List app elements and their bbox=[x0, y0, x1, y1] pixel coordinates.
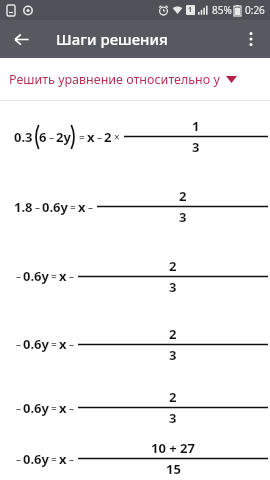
staticText: 10 + 27 bbox=[151, 439, 195, 457]
staticText: Шаги решения bbox=[56, 29, 168, 49]
staticText: 2y bbox=[56, 128, 71, 146]
staticText: 0.6y bbox=[23, 335, 49, 353]
staticText: = bbox=[51, 452, 57, 466]
staticText: – bbox=[49, 130, 54, 144]
staticText: = bbox=[70, 200, 76, 214]
staticText: x bbox=[59, 399, 67, 417]
staticText: – bbox=[69, 337, 74, 351]
button[interactable]: Back bbox=[4, 22, 38, 56]
staticText: 2 bbox=[169, 388, 177, 406]
staticText: = bbox=[51, 337, 57, 351]
staticText: – bbox=[16, 337, 21, 351]
staticText: – bbox=[88, 200, 93, 214]
staticText: – bbox=[16, 452, 21, 466]
staticText: 85% bbox=[212, 3, 232, 17]
staticText: 0.6y bbox=[23, 399, 49, 417]
button[interactable]: More options bbox=[234, 22, 268, 56]
staticText: 15 bbox=[166, 460, 181, 478]
staticText: x bbox=[78, 198, 86, 216]
staticText: 1 bbox=[192, 117, 200, 135]
staticText: – bbox=[97, 130, 102, 144]
staticText: x bbox=[87, 128, 95, 146]
staticText: – bbox=[16, 269, 21, 283]
button[interactable]: – bbox=[0, 311, 270, 377]
staticText: = bbox=[51, 401, 57, 415]
staticText: × bbox=[114, 130, 120, 144]
staticText: x bbox=[59, 267, 67, 285]
button[interactable]: Решить уравнение относительно y bbox=[0, 58, 270, 100]
staticText: 3 bbox=[169, 278, 177, 296]
staticText: 1 bbox=[188, 5, 193, 15]
staticText: = bbox=[51, 269, 57, 283]
staticText: – bbox=[35, 200, 40, 214]
staticText: 2 bbox=[169, 257, 177, 275]
button[interactable]: – bbox=[0, 241, 270, 311]
staticText: 3 bbox=[169, 346, 177, 364]
staticText: x bbox=[59, 450, 67, 468]
staticText: 3 bbox=[179, 208, 187, 226]
staticText: 0.3 bbox=[14, 128, 33, 146]
staticText: 2 bbox=[104, 128, 112, 146]
staticText: 2 bbox=[179, 187, 187, 205]
staticText: – bbox=[69, 269, 74, 283]
staticText: 3 bbox=[192, 138, 200, 156]
button[interactable]: 0.3 bbox=[0, 101, 270, 171]
staticText: – bbox=[16, 401, 21, 415]
staticText: 2 bbox=[169, 325, 177, 343]
staticText: Решить уравнение относительно y bbox=[9, 71, 220, 88]
staticText: 0.6y bbox=[42, 198, 68, 216]
staticText: x bbox=[59, 335, 67, 353]
staticText: – bbox=[69, 401, 74, 415]
staticText: 0.6y bbox=[23, 267, 49, 285]
staticText: 3 bbox=[169, 409, 177, 427]
staticText: – bbox=[69, 452, 74, 466]
staticText: 0.6y bbox=[23, 450, 49, 468]
button[interactable]: 1.8 bbox=[0, 171, 270, 241]
staticText: 0:26 bbox=[245, 3, 265, 17]
button[interactable]: – bbox=[0, 377, 270, 437]
staticText: = bbox=[79, 130, 85, 144]
staticText: 1.8 bbox=[14, 198, 33, 216]
button[interactable]: – bbox=[0, 437, 270, 480]
staticText: 6 bbox=[39, 128, 47, 146]
